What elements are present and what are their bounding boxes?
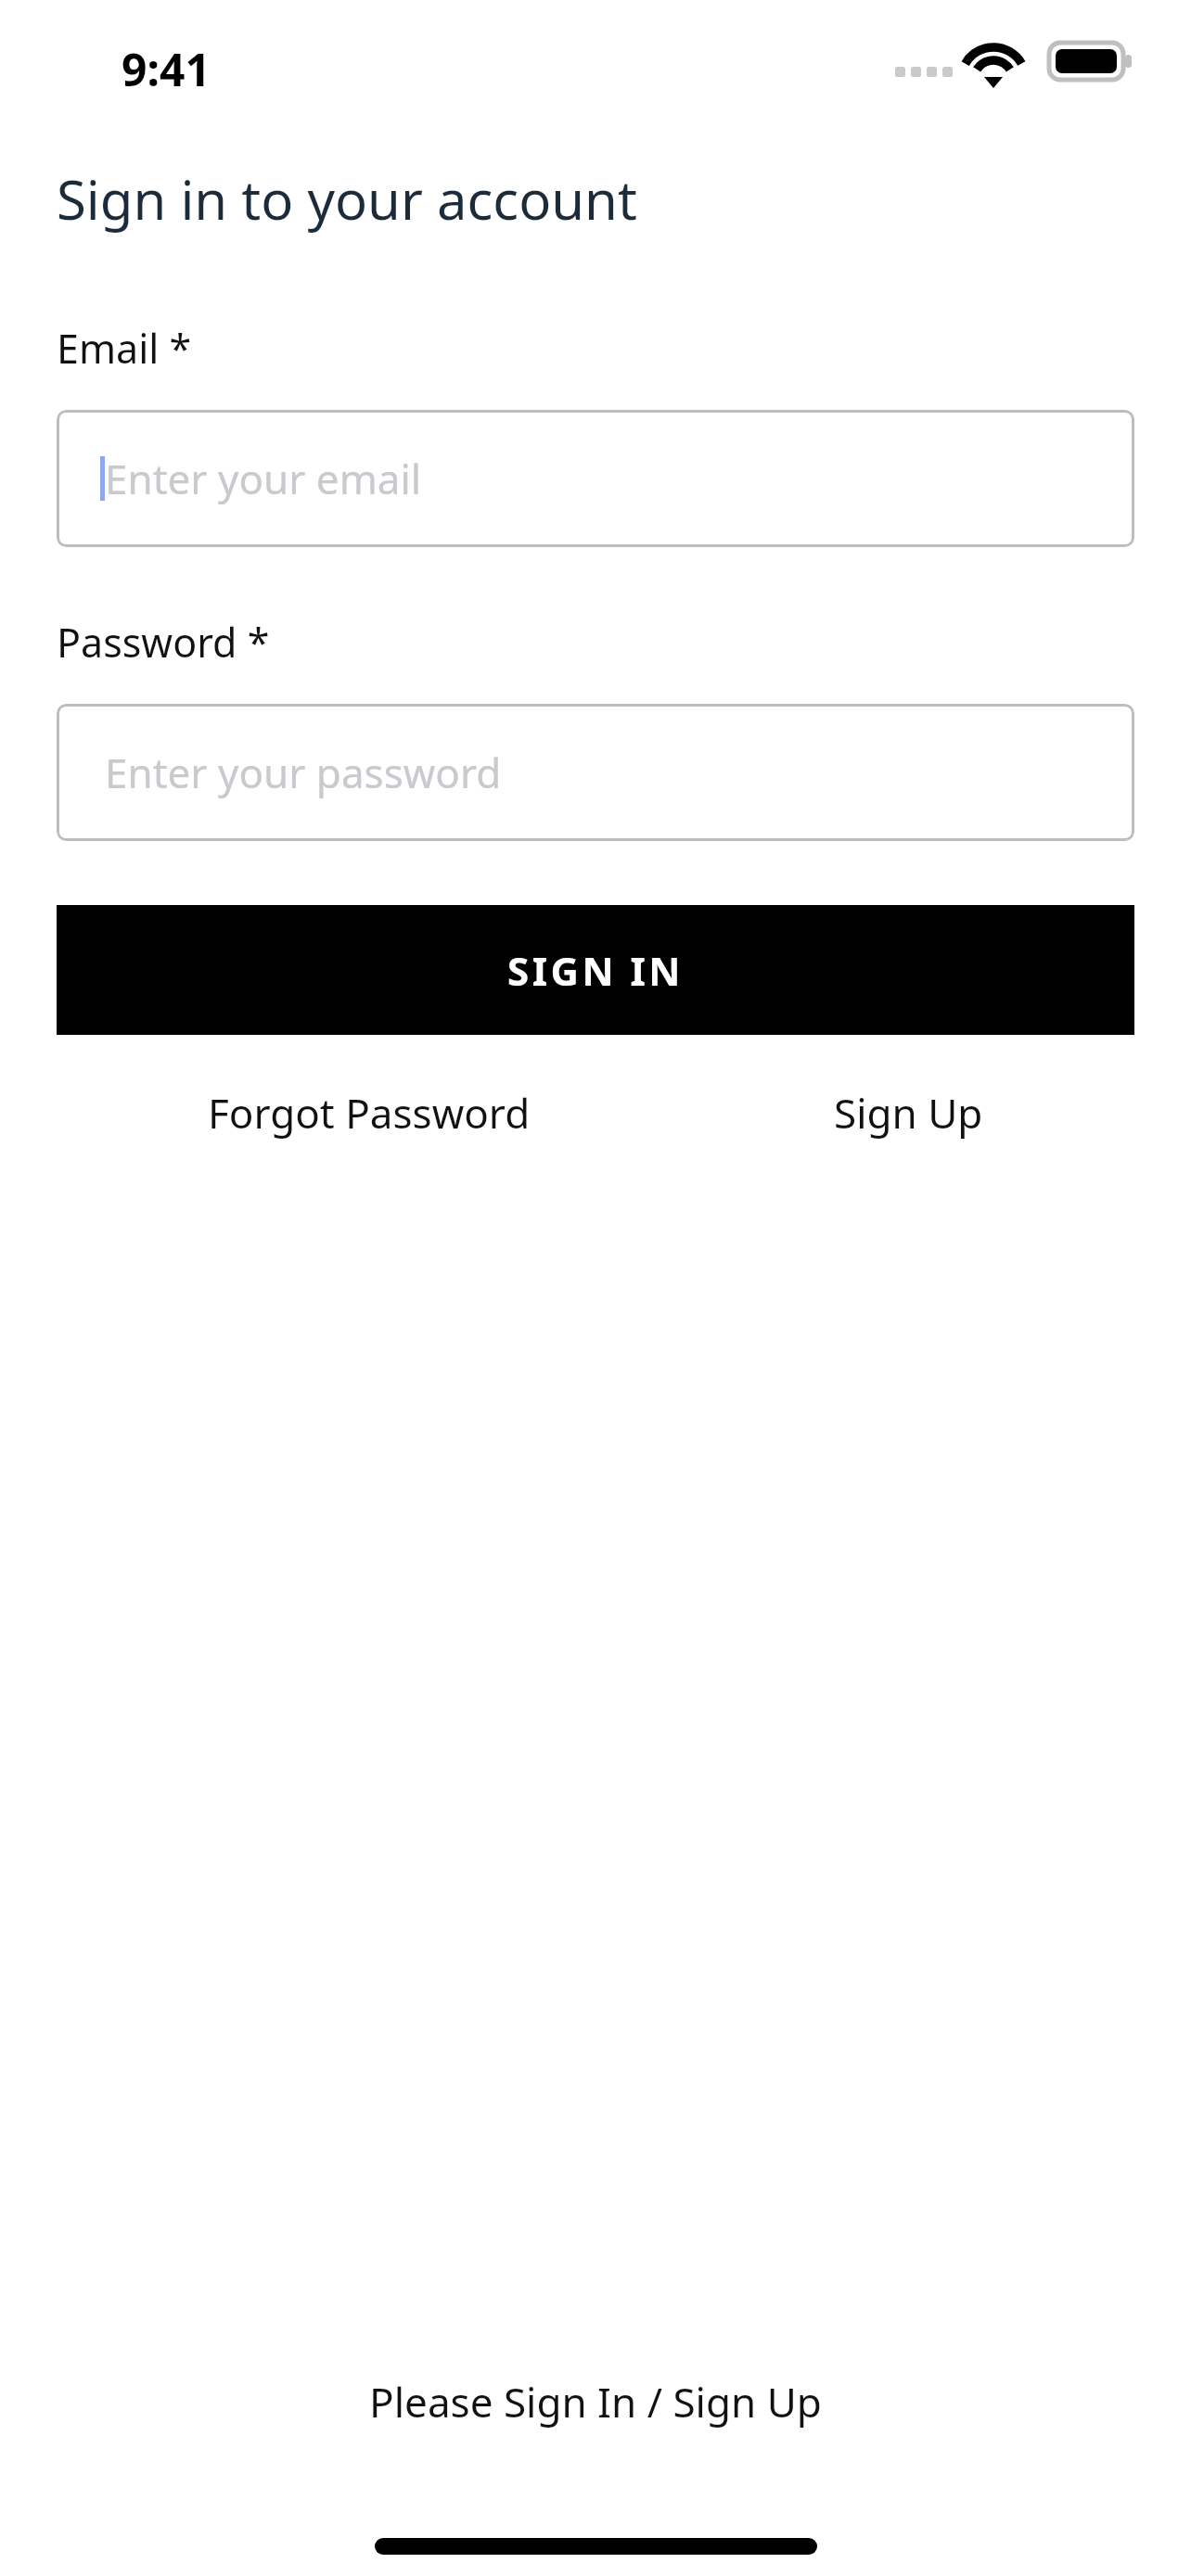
- staticText: Enter your email: [105, 451, 422, 506]
- button[interactable]: Enter your password: [57, 704, 1134, 841]
- staticText: Please Sign In / Sign Up: [0, 2374, 1191, 2429]
- staticText: Password *: [57, 615, 270, 670]
- staticText: 9:41: [122, 39, 211, 99]
- staticText: SIGN IN: [507, 944, 684, 997]
- button[interactable]: Forgot Password: [197, 1076, 542, 1150]
- button[interactable]: Sign Up: [823, 1076, 994, 1150]
- staticText: Enter your password: [105, 745, 502, 800]
- staticText: Sign in to your account: [57, 162, 637, 236]
- button[interactable]: SIGN IN: [57, 905, 1134, 1035]
- staticText: Email *: [57, 321, 192, 376]
- button[interactable]: Enter your email: [57, 410, 1134, 547]
- staticText: Sign Up: [834, 1085, 983, 1141]
- staticText: Forgot Password: [208, 1085, 531, 1141]
